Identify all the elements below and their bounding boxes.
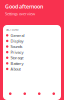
button[interactable]: Tab — [3, 92, 17, 95]
button[interactable]: Display — [3, 38, 61, 44]
staticText: Battery — [10, 61, 23, 66]
staticText: Display — [10, 38, 23, 44]
staticText: About — [10, 66, 20, 72]
button[interactable]: Tab — [32, 92, 46, 95]
staticText: General — [10, 33, 24, 38]
button[interactable]: Sounds — [3, 44, 61, 49]
button[interactable]: General — [3, 32, 61, 38]
button[interactable]: Privacy — [3, 49, 61, 55]
button[interactable]: About — [3, 66, 61, 72]
staticText: SECTIONS — [6, 28, 18, 31]
staticText: Sounds — [10, 44, 22, 49]
staticText: Storage — [10, 55, 23, 60]
staticText: Good afternoon — [5, 3, 43, 10]
button[interactable]: Storage — [3, 55, 61, 60]
staticText: Privacy — [10, 49, 23, 55]
staticText: Settings overview — [5, 11, 35, 16]
button[interactable]: Battery — [3, 60, 61, 66]
button[interactable]: Tab — [17, 92, 32, 95]
button[interactable]: Tab — [46, 92, 61, 95]
